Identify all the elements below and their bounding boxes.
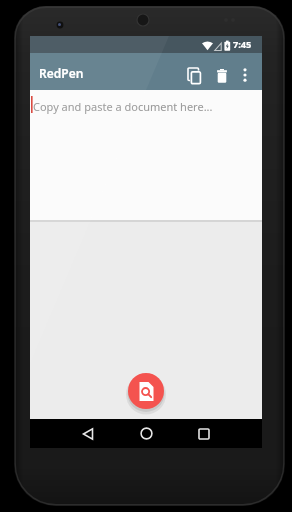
staticText: Copy and paste a document here... xyxy=(33,99,213,114)
button[interactable]: Copy and paste a document here... xyxy=(30,90,262,220)
button[interactable] xyxy=(235,63,254,87)
button[interactable] xyxy=(185,419,223,448)
button[interactable] xyxy=(128,373,164,409)
staticText: RedPen xyxy=(39,65,84,81)
staticText: 7:45 xyxy=(233,38,252,51)
button[interactable] xyxy=(69,419,107,448)
button[interactable] xyxy=(127,419,165,448)
button[interactable] xyxy=(209,61,235,90)
button[interactable] xyxy=(179,60,209,90)
